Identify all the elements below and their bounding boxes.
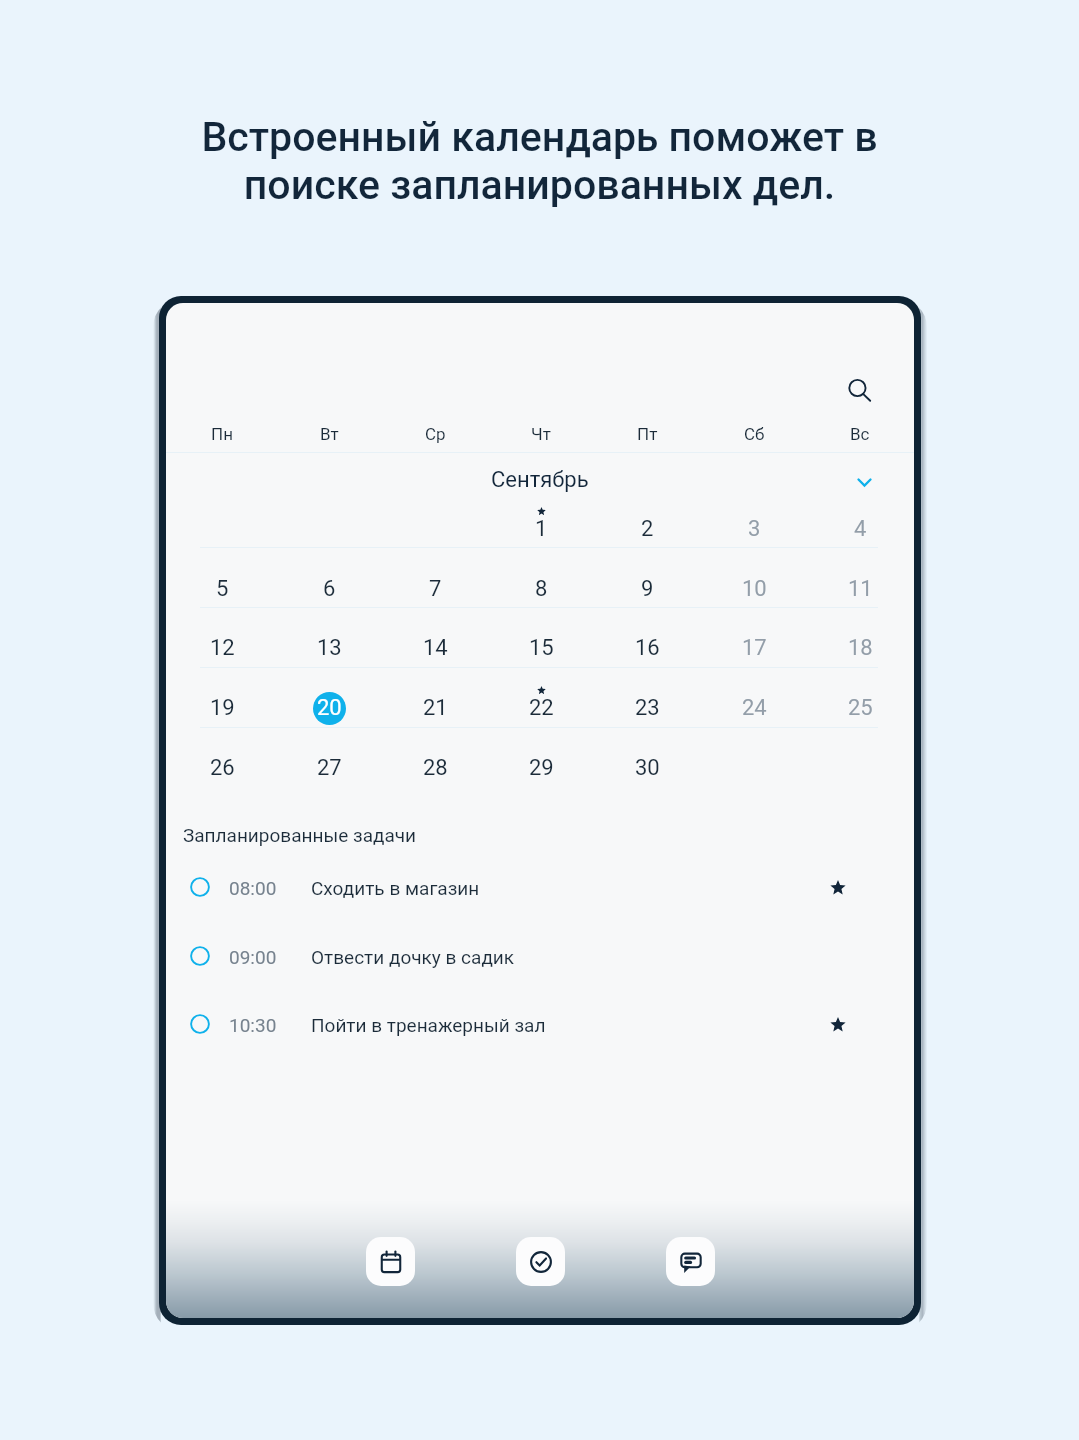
button[interactable]: 23 [620,681,674,735]
button[interactable]: 4 [833,502,887,556]
button[interactable]: 9 [620,562,674,616]
staticText: Пт [637,424,658,444]
staticText: Вс [850,424,870,444]
button[interactable]: 6 [302,562,356,616]
staticText: 7 [429,576,442,602]
staticText: 25 [848,695,873,721]
staticText: Запланированные задачи [183,824,417,846]
staticText: 10:30 [229,1014,277,1036]
staticText: Чт [531,424,551,444]
button[interactable]: 15 [514,621,568,675]
staticText: 12 [210,635,235,661]
staticText: Сентябрь [491,467,589,493]
staticText: Отвести дочку в садик [311,946,515,968]
button[interactable]: 26 [195,741,249,795]
staticText: 08:00 [229,877,277,899]
button[interactable]: 30 [620,741,674,795]
button[interactable]: 21 [408,681,462,735]
button[interactable]: 5 [195,562,249,616]
staticText: Сб [744,424,765,444]
staticText: 23 [635,695,660,721]
staticText: Встроенный календарь поможет в поиске за… [0,113,1079,209]
staticText: 28 [423,755,448,781]
staticText: 09:00 [229,946,277,968]
staticText: 1 [535,516,548,542]
button[interactable]: 20 [302,681,356,735]
staticText: 6 [323,576,336,602]
button[interactable]: Calendar [366,1237,415,1286]
button[interactable]: 14 [408,621,462,675]
button[interactable]: 19 [195,681,249,735]
button[interactable]: 13 [302,621,356,675]
staticText: 15 [529,635,554,661]
staticText: 11 [848,576,873,602]
button[interactable]: 1 [514,502,568,556]
button[interactable]: 18 [833,621,887,675]
staticText: 22 [529,695,554,721]
button[interactable]: 27 [302,741,356,795]
button[interactable]: Messages [666,1237,715,1286]
button[interactable]: 2 [620,502,674,556]
staticText: 4 [854,516,867,542]
button[interactable]: 12 [195,621,249,675]
button[interactable]: 17 [727,621,781,675]
button[interactable]: Search [837,368,882,413]
staticText: 10 [742,576,767,602]
staticText: 9 [641,576,654,602]
staticText: Вт [320,424,339,444]
staticText: 26 [210,755,235,781]
button[interactable]: 28 [408,741,462,795]
staticText: 5 [216,576,229,602]
staticText: 29 [529,755,554,781]
button[interactable]: 16 [620,621,674,675]
button[interactable]: 09:00 [166,923,914,991]
staticText: 18 [848,635,873,661]
staticText: 24 [742,695,767,721]
staticText: 20 [317,695,342,721]
staticText: 2 [641,516,654,542]
staticText: 14 [423,635,448,661]
button[interactable]: 25 [833,681,887,735]
staticText: 8 [535,576,548,602]
button[interactable]: 10 [727,562,781,616]
staticText: 17 [742,635,767,661]
staticText: 3 [748,516,761,542]
staticText: Ср [425,424,446,444]
button[interactable]: 22 [514,681,568,735]
button[interactable]: 29 [514,741,568,795]
button[interactable]: Tasks [516,1237,565,1286]
button[interactable]: 3 [727,502,781,556]
staticText: Пн [211,424,233,444]
button[interactable]: 24 [727,681,781,735]
staticText: 13 [317,635,342,661]
staticText: 21 [423,695,448,721]
button[interactable]: 11 [833,562,887,616]
staticText: 16 [635,635,660,661]
button[interactable]: 08:00 [166,854,914,922]
staticText: Пойти в тренажерный зал [311,1014,546,1036]
staticText: Сходить в магазин [311,877,480,899]
button[interactable]: 8 [514,562,568,616]
staticText: 27 [317,755,342,781]
button[interactable]: 10:30 [166,991,914,1059]
staticText: 19 [210,695,235,721]
staticText: 30 [635,755,660,781]
button[interactable]: Expand month [843,461,885,503]
button[interactable]: 7 [408,562,462,616]
